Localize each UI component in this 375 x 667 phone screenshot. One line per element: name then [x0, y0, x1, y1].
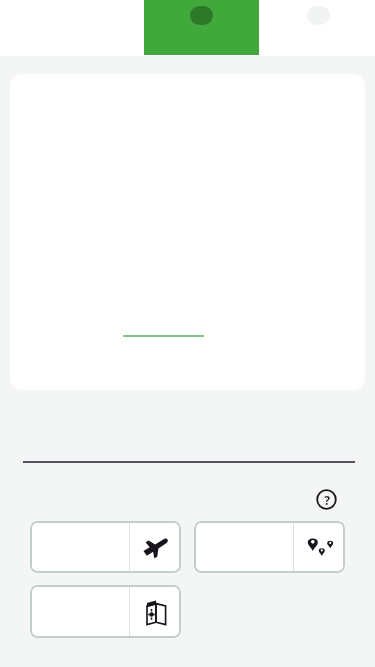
button[interactable]: Help: [316, 489, 337, 510]
button[interactable]: [10, 74, 365, 390]
button[interactable]: Places: [194, 521, 345, 573]
button[interactable]: Flights: [30, 521, 181, 573]
button[interactable]: Guides: [30, 585, 181, 638]
button[interactable]: Tab: [307, 6, 330, 25]
button[interactable]: Selected tab: [144, 0, 259, 55]
staticText: ?: [324, 492, 330, 508]
